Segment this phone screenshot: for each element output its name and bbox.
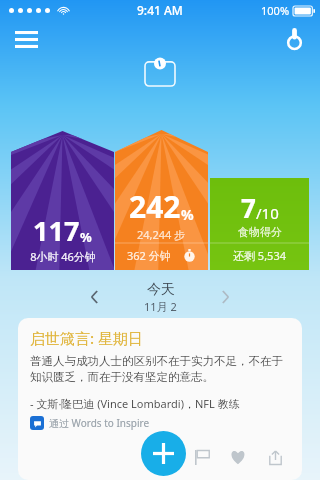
- staticText: 11月 2: [144, 299, 177, 314]
- button[interactable]: Next day: [210, 282, 240, 312]
- button[interactable]: Add: [141, 431, 186, 476]
- button[interactable]: Share: [260, 442, 290, 472]
- staticText: 9:41 AM: [137, 2, 183, 18]
- button[interactable]: 今天: [144, 281, 177, 314]
- staticText: 通过 Words to Inspire: [49, 416, 150, 430]
- staticText: 100%: [261, 3, 290, 18]
- staticText: 还剩 5,534: [233, 248, 286, 263]
- staticText: 今天: [147, 281, 175, 299]
- button[interactable]: 启世箴言: 星期日: [18, 318, 302, 480]
- staticText: 食物得分: [238, 225, 282, 239]
- staticText: 启世箴言: 星期日: [30, 328, 143, 348]
- staticText: %: [181, 205, 194, 224]
- staticText: 普通人与成功人士的区别不在于实力不足，不在于知识匮乏，而在于没有坚定的意志。: [30, 354, 290, 384]
- button[interactable]: Menu: [8, 21, 44, 57]
- button[interactable]: Favorite: [223, 442, 253, 472]
- staticText: 8小时 46分钟: [30, 249, 96, 264]
- button[interactable]: 242: [115, 186, 208, 242]
- staticText: 24,244 步: [137, 227, 186, 242]
- staticText: 7: [241, 190, 256, 225]
- button[interactable]: Flag: [187, 442, 217, 472]
- staticText: 242: [129, 186, 181, 227]
- staticText: /10: [256, 203, 279, 223]
- button[interactable]: Previous day: [80, 282, 110, 312]
- button[interactable]: Weight: [138, 52, 182, 92]
- button[interactable]: Profile: [276, 21, 312, 57]
- staticText: 117: [33, 212, 80, 249]
- staticText: 362 分钟: [127, 248, 171, 263]
- staticText: %: [80, 228, 92, 246]
- button[interactable]: 7: [210, 190, 309, 239]
- button[interactable]: 117: [11, 212, 114, 264]
- staticText: - 文斯·隆巴迪 (Vince Lombardi)，NFL 教练: [30, 396, 240, 411]
